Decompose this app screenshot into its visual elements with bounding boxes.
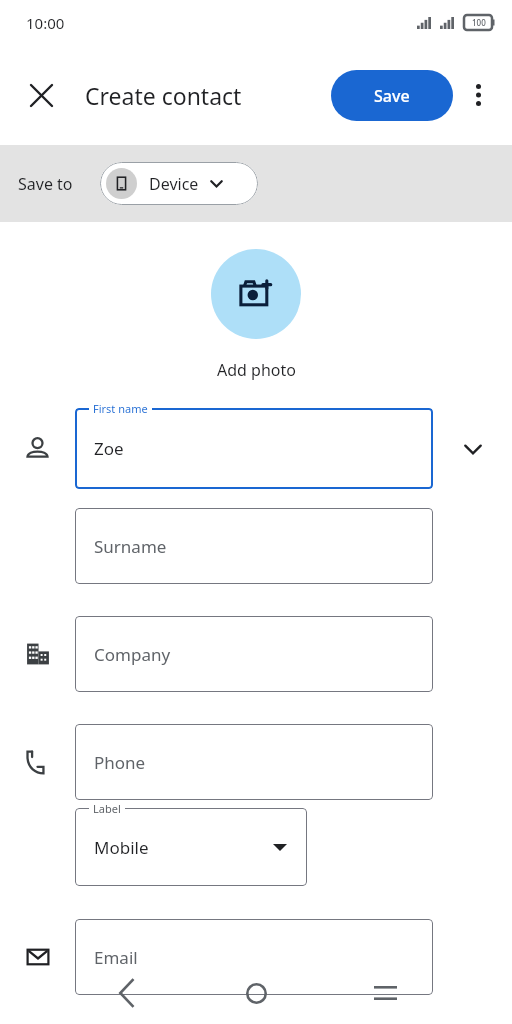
staticText: Surname <box>94 535 167 558</box>
button[interactable]: Email <box>75 919 433 995</box>
button[interactable]: Recent apps <box>362 970 408 1016</box>
button[interactable]: First name <box>75 408 433 489</box>
button[interactable]: Add photo <box>211 249 301 339</box>
staticText: Email <box>94 946 138 969</box>
button[interactable]: Phone <box>75 724 433 800</box>
button[interactable]: Surname <box>75 508 433 584</box>
button[interactable]: Company <box>75 616 433 692</box>
button[interactable]: Expand name fields <box>433 424 512 474</box>
staticText: Save <box>374 85 410 107</box>
staticText: Label <box>93 801 121 816</box>
staticText: Zoe <box>94 437 124 460</box>
staticText: Device <box>149 173 199 195</box>
staticText: Mobile <box>94 836 149 859</box>
button[interactable]: Save <box>331 70 453 121</box>
staticText: Company <box>94 643 171 666</box>
button[interactable]: Back <box>104 970 150 1016</box>
button[interactable]: Home <box>233 970 279 1016</box>
button[interactable]: Device <box>100 162 258 205</box>
staticText: First name <box>93 401 148 416</box>
staticText: Phone <box>94 751 146 774</box>
staticText: Add photo <box>217 359 296 381</box>
button[interactable]: Label <box>75 808 307 886</box>
button[interactable]: More options <box>456 73 500 117</box>
staticText: Save to <box>18 173 73 195</box>
staticText: Create contact <box>85 80 242 111</box>
button[interactable]: Close <box>18 72 64 118</box>
staticText: 10:00 <box>26 13 65 33</box>
staticText: 100 <box>472 17 486 28</box>
